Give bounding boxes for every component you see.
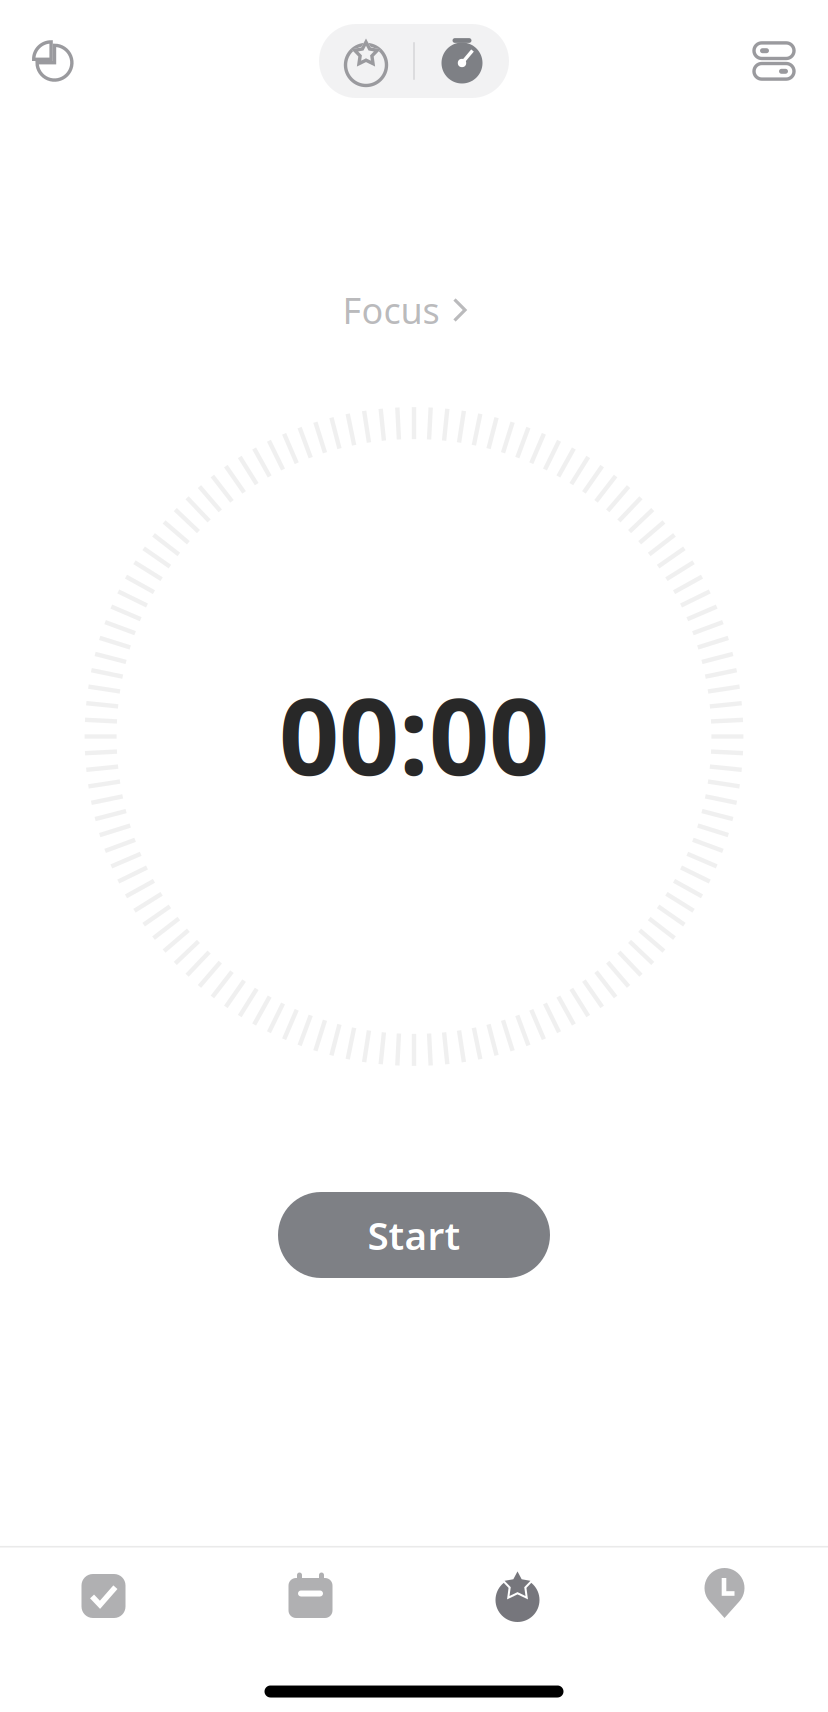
staticText: Focus [342, 286, 439, 334]
staticText: Start [367, 1209, 460, 1261]
button[interactable]: Statistics [16, 23, 92, 99]
button[interactable]: Settings [736, 23, 812, 99]
button[interactable]: Tasks [0, 1551, 207, 1641]
button[interactable]: Focus [621, 1551, 828, 1641]
button[interactable]: Habits [319, 24, 413, 98]
button[interactable]: Timer [415, 24, 509, 98]
staticText: 00:00 [279, 665, 549, 804]
button[interactable]: Focus [342, 284, 467, 336]
button[interactable]: Calendar [207, 1551, 414, 1641]
button[interactable]: Habits [414, 1551, 621, 1641]
button[interactable]: Start [278, 1192, 550, 1278]
